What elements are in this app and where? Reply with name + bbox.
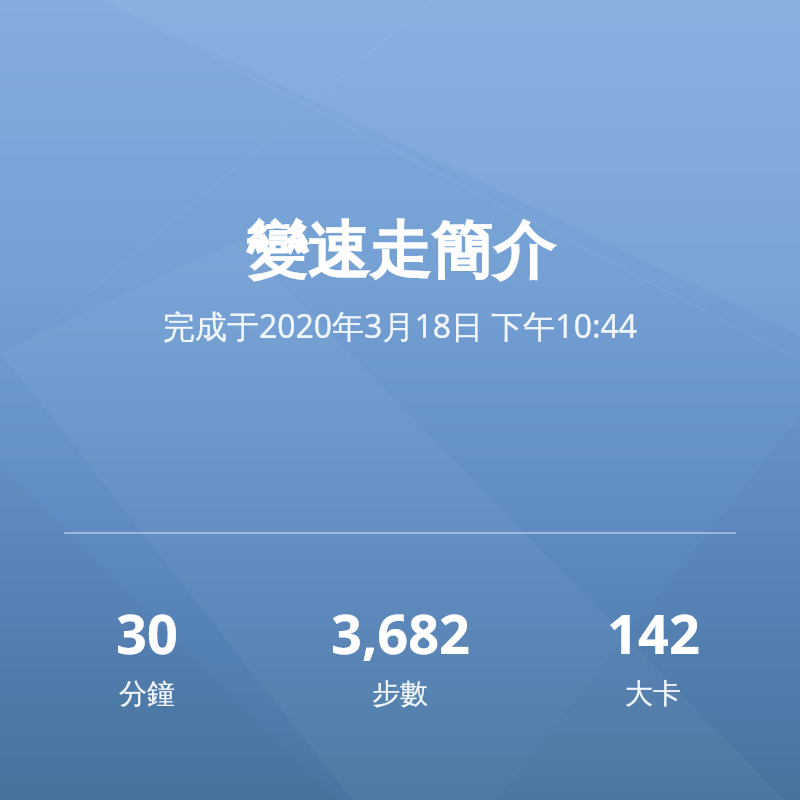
button[interactable]: 142 大卡 (506, 596, 800, 711)
staticText: 分鐘 (119, 676, 175, 711)
staticText: 30 (116, 596, 178, 670)
button[interactable]: 30 分鐘 (0, 596, 294, 711)
staticText: 變速走簡介 (0, 212, 800, 290)
staticText: 步數 (372, 676, 428, 711)
staticText: 142 (607, 596, 700, 670)
staticText: 3,682 (331, 596, 470, 670)
button[interactable]: 3,682 步數 (294, 596, 506, 711)
staticText: 大卡 (625, 676, 681, 711)
button[interactable]: 變速走簡介 (0, 212, 800, 290)
staticText: 完成于2020年3月18日 下午10:44 (0, 304, 800, 348)
